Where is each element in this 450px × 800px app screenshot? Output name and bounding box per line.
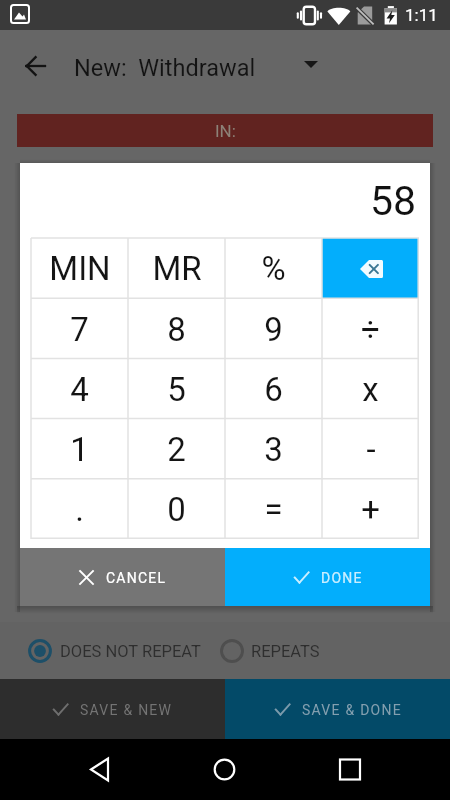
staticText: 9 [264,310,283,349]
staticText: IN: [215,121,236,141]
button[interactable]: % [225,238,322,299]
button[interactable]: SAVE & DONE [225,679,450,739]
button[interactable]: - [322,419,419,479]
staticText: SAVE & DONE [302,702,402,718]
staticText: 3 [264,430,283,469]
button[interactable]: x [322,359,419,419]
staticText: CANCEL [106,570,167,586]
staticText: . [75,490,84,529]
button[interactable]: 6 [225,359,322,419]
button[interactable]: CANCEL [20,548,225,606]
staticText: MIN [49,249,111,288]
staticText: 2 [167,430,186,469]
button[interactable]: . [31,479,128,539]
button[interactable]: 9 [225,299,322,359]
button[interactable]: Back [14,44,58,88]
button[interactable]: DONE [225,548,430,606]
staticText: DONE [321,570,363,586]
staticText: x [362,370,379,409]
button[interactable]: 4 [31,359,128,419]
staticText: 1:11 [405,5,438,25]
staticText: 58 [370,177,417,225]
button[interactable]: ÷ [322,299,419,359]
button[interactable]: MIN [31,238,128,299]
staticText: New: Withdrawal [74,54,256,82]
staticText: = [264,490,283,529]
staticText: DOES NOT REPEAT [60,642,201,661]
staticText: 4 [70,370,89,409]
staticText: ÷ [361,310,380,349]
staticText: 7 [70,310,89,349]
staticText: MR [152,249,202,288]
staticText: 5 [167,370,186,409]
staticText: - [366,430,376,469]
button[interactable]: = [225,479,322,539]
button[interactable]: SAVE & NEW [0,679,225,739]
button[interactable]: DOES NOT REPEAT [27,638,201,664]
button[interactable]: Change type [291,46,331,86]
staticText: 8 [167,310,186,349]
button[interactable]: 5 [128,359,225,419]
button[interactable]: Backspace [322,238,419,299]
button[interactable]: REPEATS [219,638,320,664]
button[interactable]: + [322,479,419,539]
button[interactable]: 1 [31,419,128,479]
button[interactable]: 8 [128,299,225,359]
other: Backspace [354,252,388,286]
staticText: 6 [264,370,283,409]
button[interactable]: MR [128,238,225,299]
staticText: REPEATS [251,642,320,661]
staticText: + [361,490,380,529]
button[interactable]: 0 [128,479,225,539]
staticText: 0 [167,490,186,529]
button[interactable]: 3 [225,419,322,479]
staticText: 1 [70,430,89,469]
button[interactable]: 2 [128,419,225,479]
staticText: % [261,249,286,288]
staticText: SAVE & NEW [80,702,173,718]
button[interactable]: 7 [31,299,128,359]
